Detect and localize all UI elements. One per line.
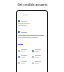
staticText: Get credible answers — [17, 3, 48, 7]
button[interactable] — [32, 55, 41, 58]
button[interactable] — [32, 61, 41, 64]
button[interactable] — [18, 55, 27, 58]
staticText: Find sources and verify — [22, 9, 43, 12]
button[interactable] — [18, 49, 27, 52]
button[interactable] — [32, 49, 41, 52]
button[interactable] — [18, 61, 27, 64]
